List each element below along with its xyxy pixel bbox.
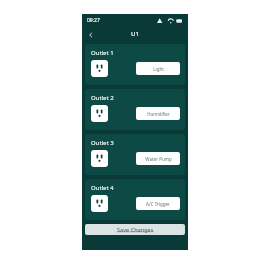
staticText: Light (153, 66, 164, 72)
button[interactable]: Outlet 2 (85, 89, 185, 130)
staticText: Outlet 1 (91, 49, 114, 57)
staticText: U1 (131, 30, 139, 38)
staticText: Outlet 2 (91, 94, 114, 102)
staticText: A/C Trigger (146, 201, 170, 207)
button[interactable]: Back (85, 29, 96, 40)
button[interactable]: Save Changes (85, 224, 185, 235)
button[interactable]: Humidifier (136, 107, 180, 120)
button[interactable]: Outlet 4 (85, 179, 185, 220)
button[interactable]: Outlet (91, 60, 108, 77)
staticText: Water Pump (145, 156, 172, 162)
staticText: Outlet 4 (91, 184, 114, 192)
button[interactable]: Outlet (91, 150, 108, 167)
button[interactable]: Outlet 1 (85, 44, 185, 85)
staticText: 09:27 (87, 17, 100, 24)
button[interactable]: Light (136, 62, 180, 75)
button[interactable]: Outlet 3 (85, 134, 185, 175)
staticText: Save Changes (117, 226, 154, 233)
button[interactable]: Outlet (91, 105, 108, 122)
button[interactable]: Outlet (91, 195, 108, 212)
staticText: Outlet 3 (91, 139, 114, 147)
button[interactable]: A/C Trigger (136, 197, 180, 210)
button[interactable]: Water Pump (136, 152, 180, 165)
staticText: Humidifier (147, 111, 170, 117)
